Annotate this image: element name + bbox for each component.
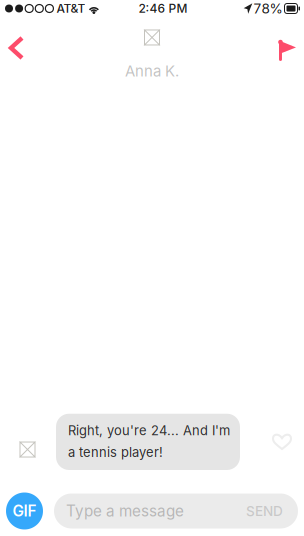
button[interactable]: Like message (262, 420, 304, 470)
staticText: 78% (253, 0, 282, 17)
staticText: Type a message (66, 502, 184, 520)
button[interactable]: SEND (232, 494, 298, 528)
image (19, 441, 35, 457)
staticText: SEND (246, 503, 283, 519)
image (144, 29, 160, 45)
staticText: a tennis player! (68, 444, 163, 460)
staticText: 2:46 PM (138, 1, 187, 16)
staticText: AT&T (56, 1, 85, 16)
button[interactable]: Report (261, 17, 304, 64)
staticText: Anna K. (125, 62, 179, 80)
staticText: GIF (12, 502, 36, 520)
button[interactable]: GIF (6, 492, 43, 529)
button[interactable]: Back (0, 18, 42, 63)
staticText: Right, you're 24... And I'm (68, 423, 230, 438)
